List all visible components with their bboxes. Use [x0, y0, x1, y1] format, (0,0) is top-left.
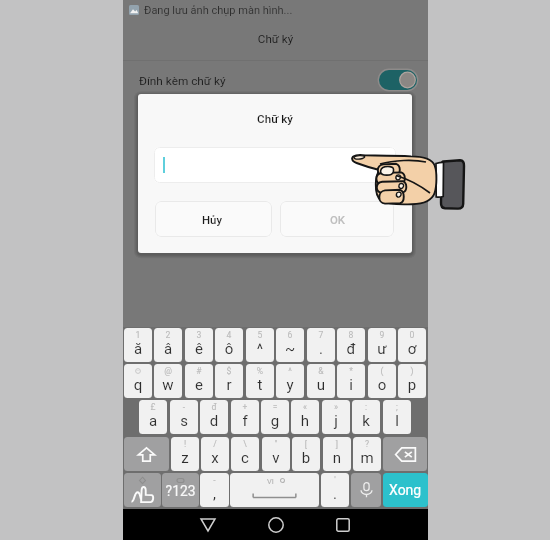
- staticText: Đang lưu ảnh chụp màn hình...: [144, 4, 293, 17]
- staticText: ?: [353, 439, 381, 449]
- button[interactable]: Shift: [124, 437, 169, 471]
- staticText: =: [261, 402, 289, 412]
- button[interactable]: ă: [124, 328, 152, 362]
- button[interactable]: r: [215, 364, 243, 398]
- button[interactable]: b: [292, 437, 320, 471]
- button[interactable]: Backspace: [383, 437, 427, 471]
- staticText: -: [200, 475, 229, 485]
- staticText: »: [322, 402, 350, 412]
- staticText: Đính kèm chữ ký: [139, 74, 226, 88]
- staticText: ô: [215, 340, 243, 358]
- button[interactable]: x: [201, 437, 229, 471]
- button[interactable]: Recents: [328, 516, 358, 533]
- button[interactable]: z: [171, 437, 199, 471]
- button[interactable]: Xong: [383, 473, 428, 507]
- staticText: \: [231, 439, 259, 449]
- staticText: u: [307, 376, 335, 394]
- button[interactable]: ô: [215, 328, 243, 362]
- staticText: «: [291, 402, 319, 412]
- button[interactable]: u: [307, 364, 335, 398]
- button[interactable]: q: [124, 364, 152, 398]
- staticText: g: [261, 412, 289, 430]
- button[interactable]: f: [231, 400, 259, 434]
- staticText: v: [262, 449, 290, 467]
- button[interactable]: ơ: [398, 328, 426, 362]
- staticText: #: [185, 366, 213, 376]
- staticText: 6: [276, 330, 304, 340]
- staticText: o: [368, 376, 396, 394]
- staticText: .: [321, 485, 349, 503]
- staticText: h: [291, 412, 319, 430]
- staticText: Chữ ký: [138, 112, 412, 126]
- button[interactable]: Back: [193, 516, 223, 533]
- staticText: Hủy: [202, 213, 222, 226]
- staticText: ê: [185, 340, 213, 358]
- staticText: +: [231, 402, 259, 412]
- button[interactable]: j: [322, 400, 350, 434]
- button[interactable]: Handwriting: [124, 473, 161, 507]
- button[interactable]: k: [352, 400, 380, 434]
- staticText: 9: [368, 330, 396, 340]
- button[interactable]: Space: [230, 473, 319, 507]
- staticText: d: [200, 412, 228, 430]
- button[interactable]: Đính kèm chữ ký: [375, 66, 421, 94]
- staticText: x: [201, 449, 229, 467]
- button[interactable]: i: [337, 364, 365, 398]
- staticText: b: [292, 449, 320, 467]
- staticText: ): [398, 366, 426, 376]
- staticText: t: [246, 376, 274, 394]
- staticText: .: [307, 340, 335, 358]
- staticText: e: [185, 376, 213, 394]
- button[interactable]: ê: [185, 328, 213, 362]
- button[interactable]: c: [231, 437, 259, 471]
- staticText: !: [171, 439, 199, 449]
- button[interactable]: â: [154, 328, 182, 362]
- button[interactable]: đ: [337, 328, 365, 362]
- button[interactable]: OK: [280, 201, 394, 237]
- button[interactable]: h: [291, 400, 319, 434]
- button[interactable]: [154, 147, 396, 183]
- button[interactable]: t: [246, 364, 274, 398]
- button[interactable]: Voice input: [351, 473, 381, 507]
- button[interactable]: m: [353, 437, 381, 471]
- staticText: 3: [185, 330, 213, 340]
- button[interactable]: ,: [200, 473, 229, 507]
- staticText: £: [139, 402, 167, 412]
- button[interactable]: e: [185, 364, 213, 398]
- staticText: ư: [368, 340, 396, 358]
- button[interactable]: Hủy: [155, 201, 272, 237]
- button[interactable]: Đính kèm chữ ký: [123, 61, 428, 98]
- staticText: 8: [337, 330, 365, 340]
- button[interactable]: y: [276, 364, 304, 398]
- staticText: đ: [337, 340, 365, 358]
- button[interactable]: w: [154, 364, 182, 398]
- staticText: ": [262, 439, 290, 449]
- staticText: ;: [383, 402, 411, 412]
- button[interactable]: Home: [261, 516, 291, 533]
- staticText: ': [321, 475, 349, 485]
- staticText: OK: [330, 213, 346, 226]
- staticText: [124, 366, 152, 376]
- button[interactable]: g: [261, 400, 289, 434]
- staticText: ]: [323, 439, 351, 449]
- button[interactable]: p: [398, 364, 426, 398]
- staticText: y: [276, 376, 304, 394]
- staticText: *: [337, 366, 365, 376]
- staticText: ^: [276, 366, 304, 376]
- button[interactable]: a: [139, 400, 167, 434]
- button[interactable]: v: [262, 437, 290, 471]
- button[interactable]: ^: [246, 328, 274, 362]
- button[interactable]: n: [323, 437, 351, 471]
- button[interactable]: s: [170, 400, 198, 434]
- staticText: $: [215, 366, 243, 376]
- staticText: Xong: [389, 482, 422, 498]
- button[interactable]: ~: [276, 328, 304, 362]
- button[interactable]: Symbols: [162, 473, 199, 507]
- button[interactable]: .: [307, 328, 335, 362]
- button[interactable]: ư: [368, 328, 396, 362]
- button[interactable]: o: [368, 364, 396, 398]
- staticText: r: [215, 376, 243, 394]
- button[interactable]: d: [200, 400, 228, 434]
- button[interactable]: l: [383, 400, 411, 434]
- button[interactable]: .: [321, 473, 349, 507]
